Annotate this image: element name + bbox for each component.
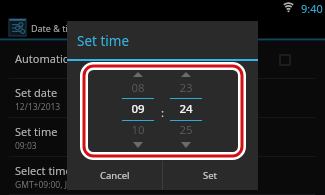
button[interactable]: Cancel: [67, 161, 162, 190]
button[interactable]: Decrease Hour: [121, 136, 155, 152]
button[interactable]: Decrease Minute: [169, 136, 203, 152]
button[interactable]: Increase Minute: [169, 66, 203, 82]
button[interactable]: Set time: [0, 118, 325, 157]
staticText: Cancel: [100, 169, 130, 182]
staticText: GMT+09:00, Japan Standard Time: [15, 179, 148, 191]
staticText: Set time: [15, 124, 58, 139]
staticText: 08: [121, 80, 155, 96]
staticText: Automatic date & time: [15, 51, 132, 66]
button[interactable]: Increase Hour: [121, 66, 155, 82]
button[interactable]: Set: [163, 161, 258, 190]
staticText: 25: [169, 122, 203, 138]
staticText: Set: [203, 169, 218, 182]
staticText: 09: [121, 101, 155, 117]
staticText: :: [161, 105, 165, 121]
staticText: 12/13/2013: [15, 101, 61, 113]
staticText: Select time zone: [15, 163, 100, 178]
staticText: 10: [121, 122, 155, 138]
staticText: Set time: [77, 32, 130, 50]
staticText: 9:40: [301, 1, 323, 16]
staticText: 09:03: [15, 140, 37, 152]
button[interactable]: Automatic date & time checkbox: [280, 55, 290, 65]
staticText: Date & time: [31, 22, 82, 34]
button[interactable]: Select time zone: [0, 157, 325, 195]
staticText: 23: [169, 80, 203, 96]
button[interactable]: Set date: [0, 79, 325, 118]
button[interactable]: Automatic date & time: [0, 41, 325, 79]
staticText: Set date: [15, 85, 58, 100]
staticText: 24: [169, 101, 203, 117]
